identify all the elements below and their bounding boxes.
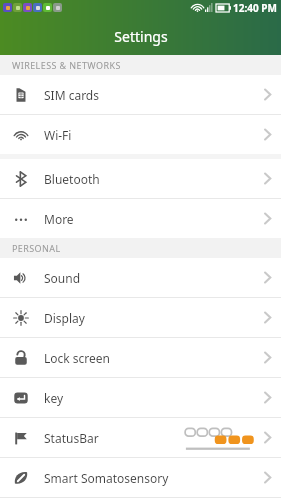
staticText: StatusBar xyxy=(44,430,99,446)
button[interactable]: Sound xyxy=(0,258,281,297)
other: Open Sound xyxy=(264,271,271,284)
staticText: PERSONAL xyxy=(12,242,61,254)
other: Open Smart Somatosensory xyxy=(264,471,271,484)
button[interactable]: Display xyxy=(0,298,281,337)
button[interactable]: SIM cards xyxy=(0,75,281,114)
staticText: Lock screen xyxy=(44,350,111,366)
staticText: Settings xyxy=(114,27,168,46)
button[interactable]: Lock screen xyxy=(0,338,281,377)
button[interactable]: StatusBar xyxy=(0,418,281,457)
other: Open More xyxy=(264,212,271,225)
other: Open StatusBar xyxy=(264,431,271,444)
other: Open SIM cards xyxy=(264,88,271,101)
staticText: Bluetooth xyxy=(44,171,100,187)
staticText: 12:40 PM xyxy=(233,1,277,15)
staticText: More xyxy=(44,211,74,227)
button[interactable]: Smart Somatosensory xyxy=(0,458,281,497)
button[interactable]: More xyxy=(0,199,281,238)
staticText: Wi-Fi xyxy=(44,127,72,143)
other: Open Display xyxy=(264,311,271,324)
staticText: Sound xyxy=(44,270,81,286)
button[interactable]: Wi-Fi xyxy=(0,115,281,154)
staticText: WIRELESS & NETWORKS xyxy=(12,59,121,71)
staticText: SIM cards xyxy=(44,87,99,103)
staticText: key xyxy=(44,390,64,406)
button[interactable]: Bluetooth xyxy=(0,159,281,198)
staticText: Smart Somatosensory xyxy=(44,470,169,486)
other: Open Lock screen xyxy=(264,351,271,364)
other: Open Bluetooth xyxy=(264,172,271,185)
staticText: Display xyxy=(44,310,85,326)
other: Open Wi-Fi xyxy=(264,128,271,141)
other: Open key xyxy=(264,391,271,404)
button[interactable]: key xyxy=(0,378,281,417)
